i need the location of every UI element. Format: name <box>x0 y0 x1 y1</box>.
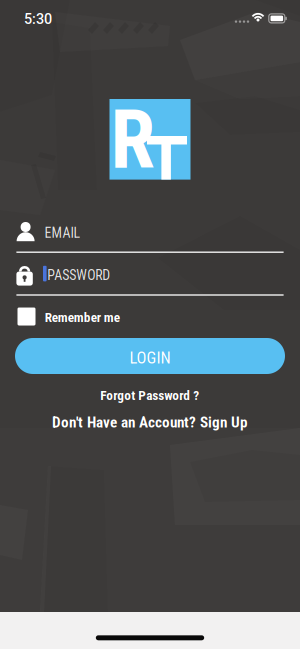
staticText: LOGIN <box>129 348 170 368</box>
button[interactable]: Remember me <box>0 305 300 327</box>
staticText: Remember me <box>45 310 120 325</box>
button[interactable]: PASSWORD <box>0 261 300 291</box>
staticText: EMAIL <box>44 225 80 241</box>
staticText: Forgot Password ? <box>100 388 199 403</box>
button[interactable]: Don't Have an Account? Sign Up <box>52 413 248 431</box>
staticText: PASSWORD <box>47 267 110 283</box>
staticText: R <box>110 92 155 187</box>
staticText: 5:30 <box>24 11 52 27</box>
button[interactable]: EMAIL <box>0 218 300 246</box>
staticText: Don't Have an Account? Sign Up <box>52 413 248 431</box>
button[interactable]: Forgot Password ? <box>100 388 199 403</box>
button[interactable]: LOGIN <box>15 338 285 374</box>
